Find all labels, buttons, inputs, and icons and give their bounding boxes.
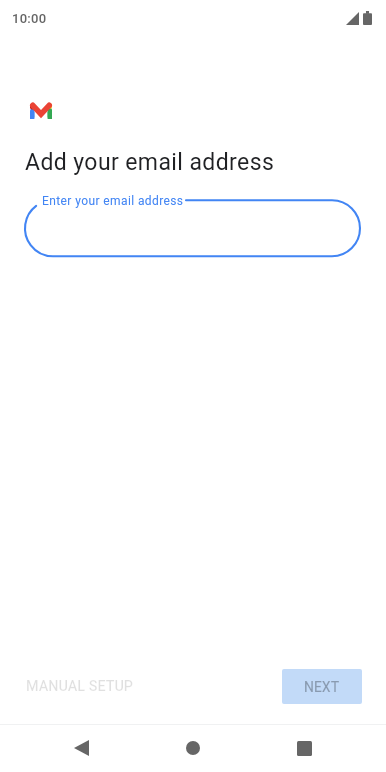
button[interactable]: Enter your email address bbox=[25, 200, 360, 256]
button[interactable]: MANUAL SETUP bbox=[12, 669, 148, 704]
button[interactable]: Home bbox=[169, 724, 217, 772]
button[interactable]: Back bbox=[57, 724, 105, 772]
staticText: 10:00 bbox=[12, 11, 47, 26]
staticText: MANUAL SETUP bbox=[26, 678, 134, 695]
button[interactable]: Recent apps bbox=[280, 724, 328, 772]
staticText: NEXT bbox=[304, 679, 340, 695]
staticText: Enter your email address bbox=[42, 194, 184, 208]
staticText: Add your email address bbox=[25, 149, 275, 176]
button[interactable]: NEXT bbox=[282, 669, 362, 704]
